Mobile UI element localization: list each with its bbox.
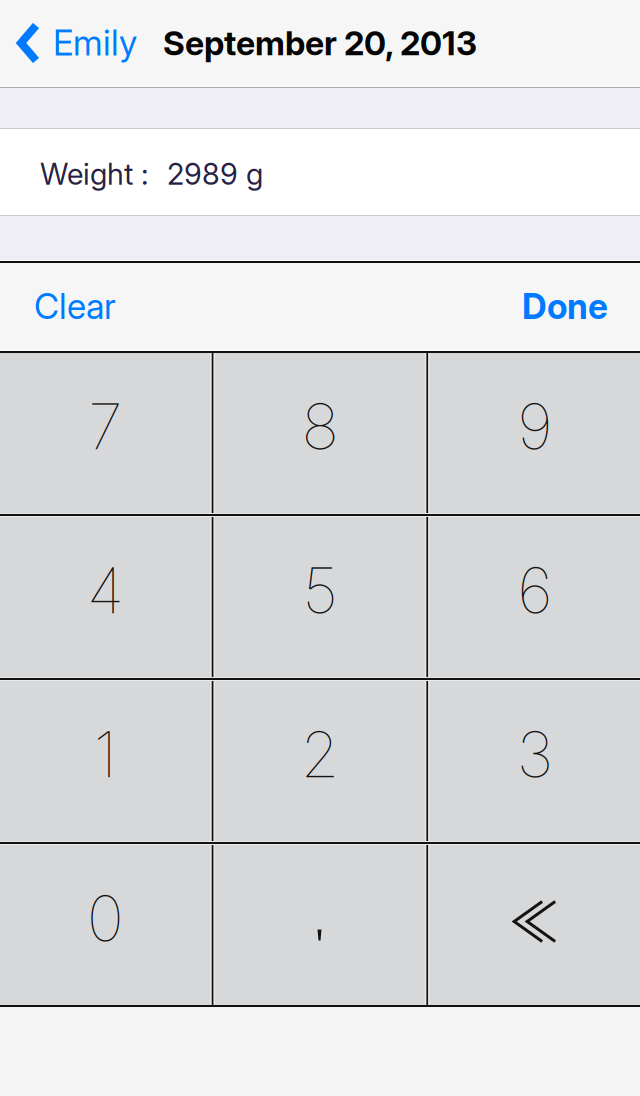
button[interactable]: 6 [429,517,640,677]
button[interactable]: Done [500,263,640,350]
staticText: 4 [87,553,124,628]
staticText: 1 [94,717,117,792]
button[interactable]: 7 [0,353,211,513]
staticText: Done [522,285,608,327]
staticText: 8 [301,389,338,464]
staticText: Weight : [40,156,149,192]
button[interactable]: 4 [0,517,211,677]
button[interactable]: 5 [215,517,425,677]
staticText: 2989 g [167,156,263,192]
button[interactable]: 1 [0,681,211,841]
staticText: 6 [517,553,552,628]
staticText: Emily [53,22,137,64]
button[interactable]: 0 [0,845,211,1005]
button[interactable]: 2 [215,681,425,841]
staticText: 2 [300,717,339,792]
button[interactable]: 3 [429,681,640,841]
staticText: 3 [517,717,553,792]
staticText: Clear [34,285,116,327]
staticText: 9 [517,389,552,464]
staticText: 5 [302,553,337,628]
staticText: September 20, 2013 [163,23,477,63]
button[interactable]: 8 [215,353,425,513]
button[interactable]: Emily [0,0,149,86]
button[interactable]: Clear [0,263,138,350]
button[interactable]: Weight : [0,129,640,215]
staticText: 7 [88,389,122,464]
staticText: 0 [87,881,124,956]
button[interactable]: Delete [429,845,640,1005]
button[interactable]: 9 [429,353,640,513]
button[interactable]: Decimal comma [215,845,425,1005]
